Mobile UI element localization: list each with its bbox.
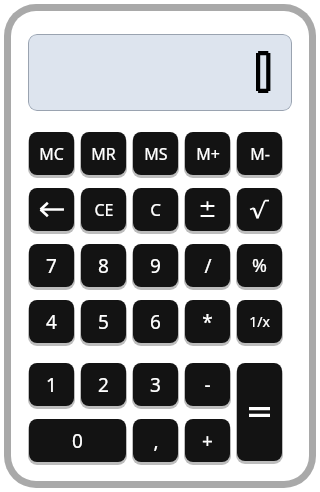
staticText: 9 (150, 253, 161, 279)
staticText: 4 (46, 309, 57, 335)
button[interactable]: Equals (237, 363, 282, 461)
button[interactable]: 1/x (237, 300, 282, 343)
staticText: 1/x (249, 312, 270, 331)
button[interactable]: Square root (237, 188, 282, 231)
button[interactable]: MC (29, 132, 74, 175)
button[interactable]: CE (81, 188, 126, 231)
staticText: C (150, 198, 161, 221)
staticText: M- (250, 143, 270, 165)
button[interactable]: + (185, 419, 230, 462)
button[interactable]: M+ (185, 132, 230, 175)
button[interactable]: 8 (81, 244, 126, 287)
button[interactable]: - (185, 363, 230, 406)
staticText: CE (94, 199, 114, 221)
button[interactable]: 6 (133, 300, 178, 343)
staticText: 2 (98, 372, 109, 398)
staticText: , (153, 428, 159, 454)
button[interactable]: Backspace (29, 188, 74, 231)
staticText: 3 (150, 372, 161, 398)
button[interactable]: 1 (29, 363, 74, 406)
button[interactable]: Plus minus (185, 188, 230, 231)
staticText: - (204, 372, 211, 398)
staticText: % (252, 253, 267, 278)
staticText: MC (39, 143, 64, 165)
staticText: 5 (98, 309, 109, 335)
button[interactable]: 3 (133, 363, 178, 406)
button[interactable]: * (185, 300, 230, 343)
staticText: 7 (46, 253, 57, 279)
button[interactable]: / (185, 244, 230, 287)
button[interactable]: MR (81, 132, 126, 175)
staticText: 6 (150, 309, 161, 335)
button[interactable]: 4 (29, 300, 74, 343)
button[interactable]: 0 (29, 419, 126, 462)
staticText: MR (91, 143, 116, 165)
staticText: MS (144, 143, 168, 165)
button[interactable]: M- (237, 132, 282, 175)
staticText: * (202, 309, 213, 335)
staticText: 1 (46, 372, 57, 398)
button[interactable]: 7 (29, 244, 74, 287)
staticText: 0 (72, 428, 83, 454)
button[interactable]: % (237, 244, 282, 287)
button[interactable]: 9 (133, 244, 178, 287)
staticText: 8 (98, 253, 109, 279)
staticText: M+ (196, 143, 220, 165)
staticText: / (204, 253, 212, 279)
staticText: + (202, 428, 213, 454)
button[interactable]: 2 (81, 363, 126, 406)
button[interactable]: 5 (81, 300, 126, 343)
button[interactable]: , (133, 419, 178, 462)
button[interactable]: C (133, 188, 178, 231)
button[interactable]: MS (133, 132, 178, 175)
